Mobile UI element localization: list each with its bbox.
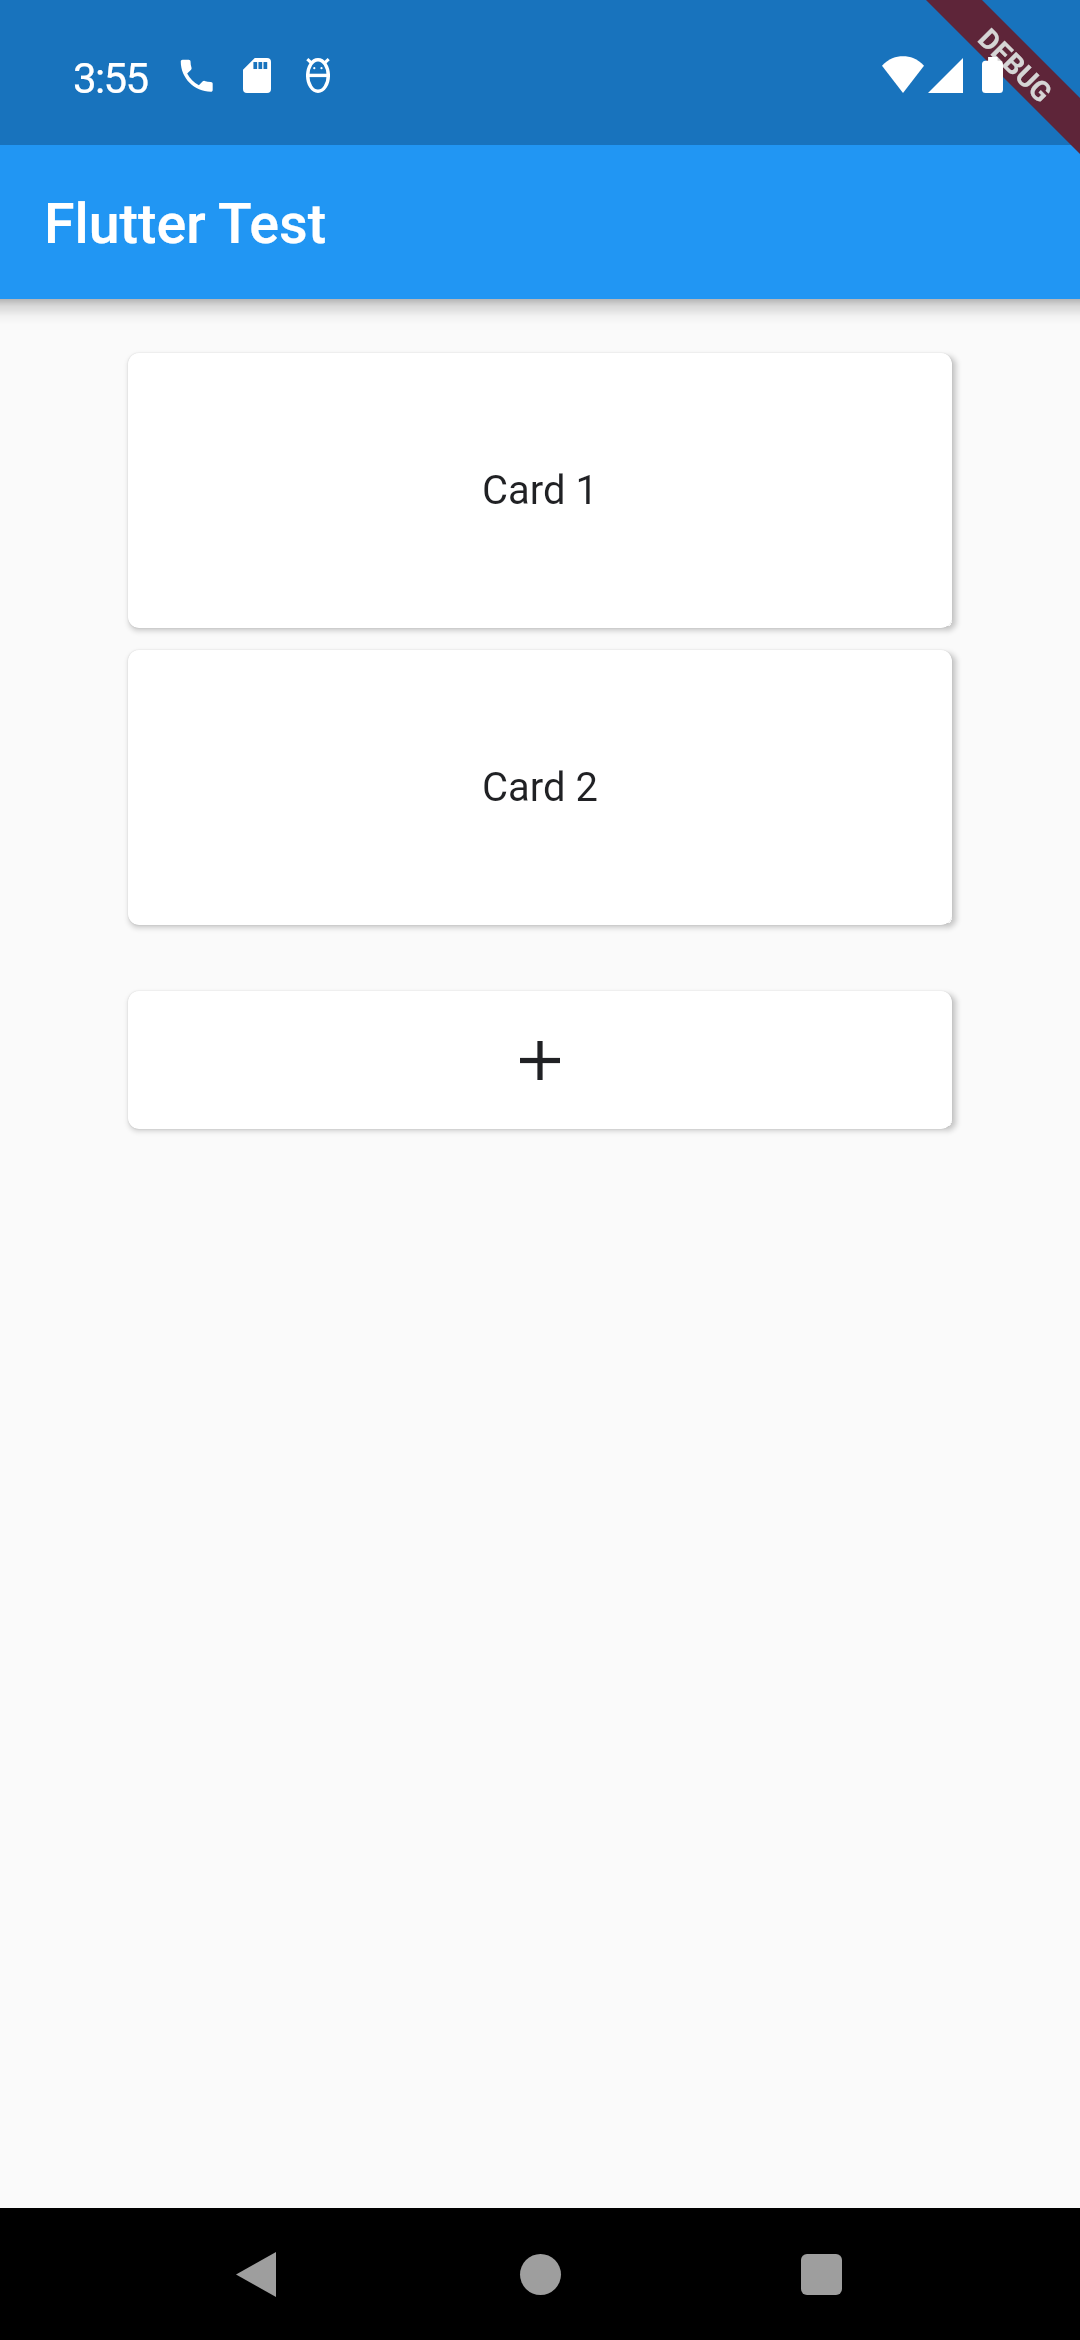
staticText: 3:55 — [73, 54, 148, 103]
button[interactable]: Card 1 — [128, 353, 952, 628]
staticText: DEBUG — [971, 22, 1059, 110]
staticText: Card 2 — [482, 764, 598, 811]
staticText: Card 1 — [482, 467, 598, 514]
button[interactable]: Home — [470, 2208, 610, 2340]
button[interactable]: Card 2 — [128, 650, 952, 925]
other: Add card — [520, 1041, 560, 1080]
button[interactable]: Add card — [128, 991, 952, 1129]
button[interactable]: Recent apps — [751, 2208, 891, 2340]
button[interactable]: Back — [186, 2208, 326, 2340]
staticText: Flutter Test — [44, 192, 327, 257]
